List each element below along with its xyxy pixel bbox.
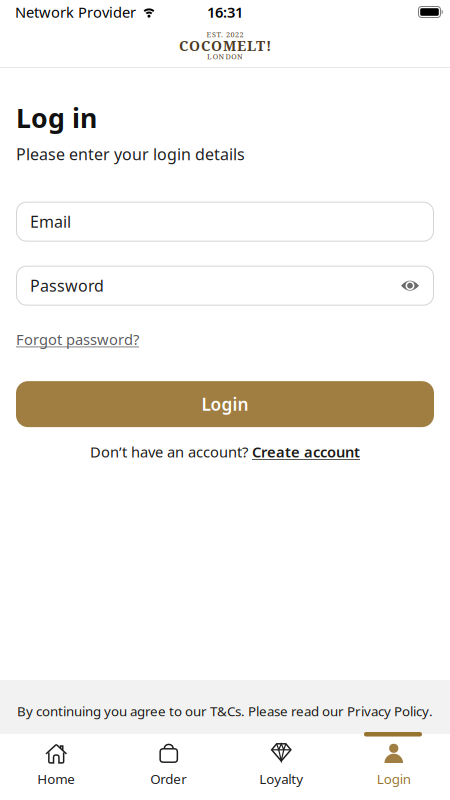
button[interactable]: Don’t have an account? Create account xyxy=(90,442,360,462)
button[interactable]: Loyalty xyxy=(225,742,337,788)
staticText: Login xyxy=(377,770,411,788)
button[interactable]: Order xyxy=(112,742,225,788)
staticText: Log in xyxy=(16,100,97,135)
staticText: 16:31 xyxy=(207,2,243,22)
staticText: Don’t have an account? Create account xyxy=(90,442,360,462)
button[interactable]: Password xyxy=(16,266,434,306)
staticText: LONDON xyxy=(207,51,243,61)
staticText: Loyalty xyxy=(259,770,303,788)
staticText: EST. 2022 xyxy=(206,29,243,39)
staticText: Home xyxy=(37,770,75,788)
staticText: Login xyxy=(201,393,248,416)
staticText: Please enter your login details xyxy=(16,143,245,165)
button[interactable]: Forgot password? xyxy=(16,330,139,349)
staticText: Order xyxy=(150,770,187,788)
staticText: By continuing you agree to our T&Cs. Ple… xyxy=(17,702,433,720)
button[interactable]: Email xyxy=(16,202,434,242)
button[interactable]: Show password xyxy=(400,279,420,292)
button[interactable]: Home xyxy=(0,742,112,788)
staticText: Network Provider xyxy=(15,2,136,22)
staticText: Email xyxy=(30,211,71,232)
button[interactable]: Login xyxy=(16,381,434,427)
staticText: Forgot password? xyxy=(16,330,139,349)
button[interactable]: Login xyxy=(337,742,450,788)
staticText: COCOMELT! xyxy=(179,36,271,55)
staticText: Password xyxy=(30,275,104,296)
